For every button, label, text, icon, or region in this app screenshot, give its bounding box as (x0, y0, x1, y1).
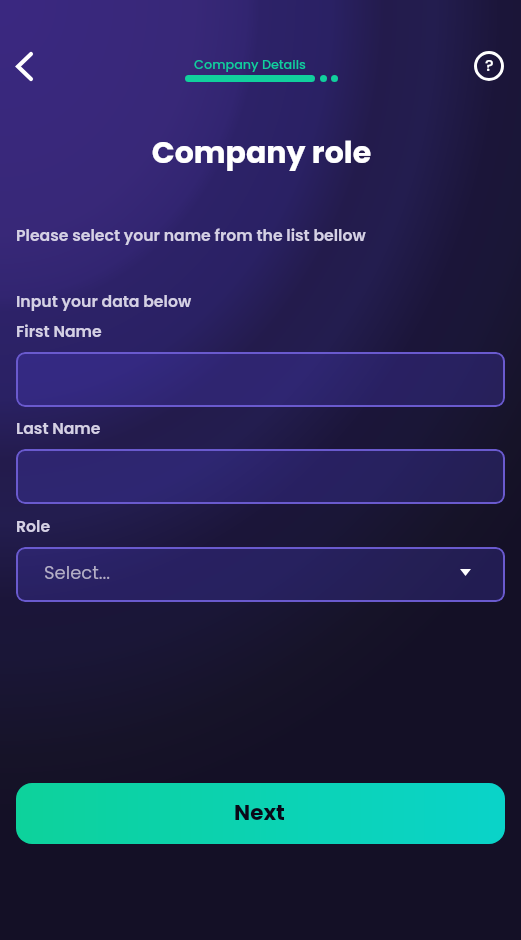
staticText: ? (485, 54, 494, 76)
button[interactable]: Select... (16, 547, 505, 602)
staticText: Company Details (185, 56, 315, 74)
button[interactable] (16, 449, 505, 504)
button[interactable] (16, 352, 505, 407)
staticText: Company role (1, 132, 521, 174)
staticText: Last Name (16, 418, 101, 440)
staticText: Select... (44, 560, 111, 585)
button[interactable]: Next (16, 783, 505, 844)
staticText: First Name (16, 321, 102, 343)
button[interactable]: Back (1, 43, 47, 89)
staticText: Next (234, 797, 285, 827)
staticText: Input your data below (16, 291, 192, 313)
button[interactable]: Help (466, 43, 512, 89)
staticText: Please select your name from the list be… (16, 225, 366, 247)
staticText: Role (16, 516, 51, 538)
